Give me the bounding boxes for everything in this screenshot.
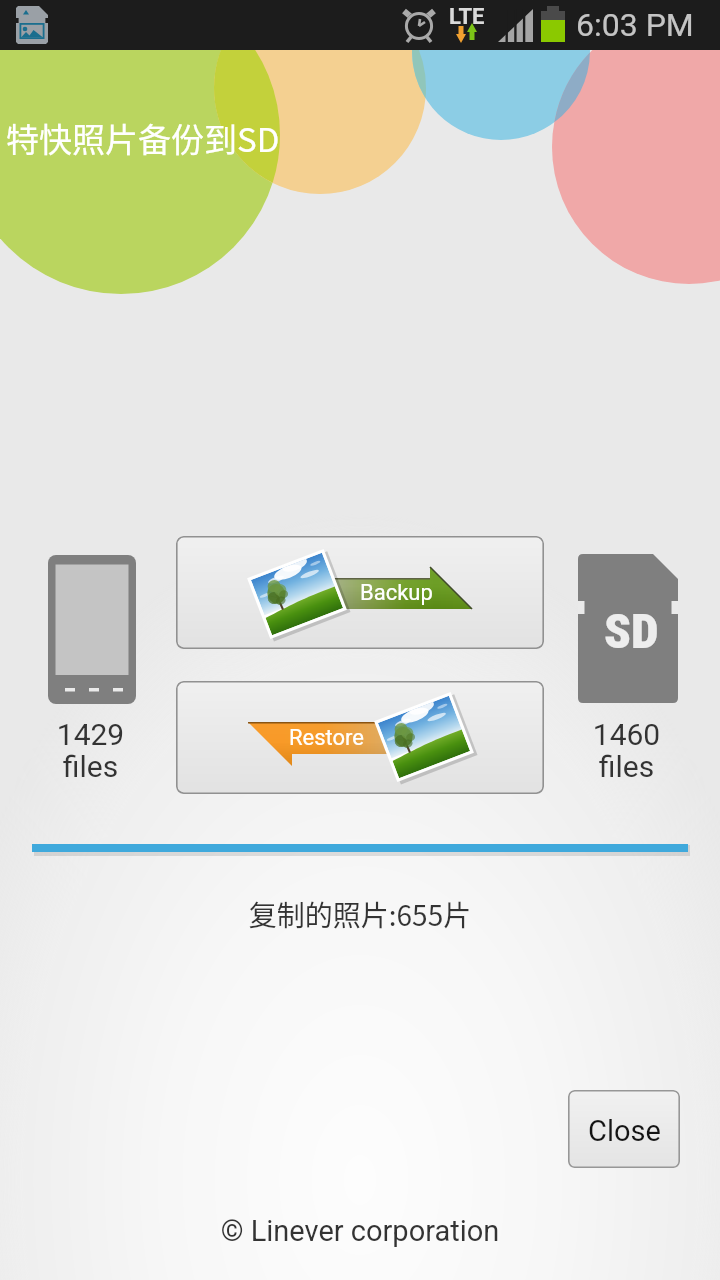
button[interactable]: Restore bbox=[176, 681, 544, 794]
button[interactable]: Backup bbox=[176, 536, 544, 649]
other: Photos backed up to SD card bbox=[16, 6, 48, 44]
staticText: 特快照片备份到SD bbox=[6, 114, 280, 162]
staticText: 复制的照片:655片 bbox=[0, 894, 720, 935]
staticText: Close bbox=[588, 1114, 661, 1148]
staticText: files bbox=[0, 749, 181, 784]
staticText: Backup bbox=[360, 580, 433, 606]
staticText: LTE bbox=[449, 4, 485, 30]
staticText: SD bbox=[604, 603, 659, 660]
staticText: Restore bbox=[289, 725, 365, 751]
staticText: © Linever corporation bbox=[0, 1214, 720, 1248]
staticText: 1429 bbox=[0, 717, 181, 752]
staticText: 1460 bbox=[536, 717, 717, 752]
button[interactable]: Close bbox=[568, 1090, 680, 1168]
staticText: files bbox=[536, 749, 717, 784]
staticText: 6:03 PM bbox=[576, 6, 694, 44]
